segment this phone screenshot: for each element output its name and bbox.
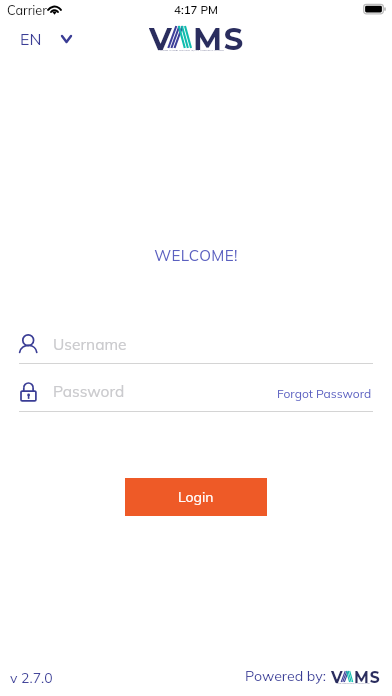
button[interactable]: Username bbox=[16, 330, 373, 364]
staticText: Username bbox=[53, 334, 127, 353]
staticText: Powered by: bbox=[245, 667, 327, 685]
staticText: MS bbox=[354, 668, 381, 684]
button[interactable]: Login bbox=[125, 478, 267, 516]
button[interactable]: Forgot Password bbox=[273, 383, 376, 404]
staticText: v 2.7.0 bbox=[10, 669, 53, 687]
staticText: VISITOR AUTHENTICATION & MANAGEMENT SYST… bbox=[336, 683, 383, 685]
staticText: Forgot Password bbox=[277, 386, 372, 401]
staticText: MS bbox=[193, 20, 245, 51]
staticText: VISITOR AUTHENTICATION & MANAGEMENT SYST… bbox=[158, 49, 251, 52]
staticText: Login bbox=[178, 488, 214, 506]
staticText: WELCOME! bbox=[0, 246, 392, 265]
staticText: Password bbox=[53, 381, 125, 400]
staticText: 4:17 PM bbox=[174, 2, 218, 16]
other: Change language bbox=[62, 36, 71, 42]
button[interactable]: Password bbox=[16, 377, 256, 411]
staticText: V bbox=[149, 20, 172, 51]
staticText: Carrier bbox=[7, 2, 47, 18]
staticText: EN bbox=[20, 29, 42, 49]
staticText: V bbox=[331, 668, 343, 684]
button[interactable]: EN bbox=[12, 25, 79, 53]
